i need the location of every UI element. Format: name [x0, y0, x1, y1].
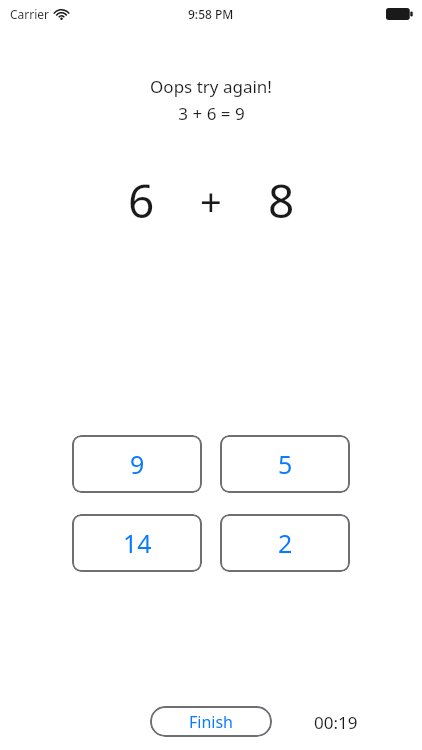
staticText: 8	[268, 169, 295, 232]
staticText: Carrier	[10, 6, 50, 22]
button[interactable]: 5	[220, 435, 350, 493]
button[interactable]: 14	[72, 514, 202, 572]
staticText: 3 + 6 = 9	[178, 102, 245, 125]
staticText: 9:58 PM	[188, 6, 234, 22]
button[interactable]: 9	[72, 435, 202, 493]
staticText: +	[200, 175, 222, 227]
staticText: 6	[128, 169, 155, 232]
staticText: 9	[130, 447, 145, 481]
staticText: Oops try again!	[150, 75, 272, 98]
staticText: Finish	[189, 711, 234, 733]
staticText: 5	[278, 447, 293, 481]
staticText: 14	[123, 526, 152, 560]
button[interactable]: 2	[220, 514, 350, 572]
staticText: 2	[278, 526, 293, 560]
button[interactable]: Finish	[150, 706, 272, 737]
staticText: 00:19	[314, 711, 358, 734]
